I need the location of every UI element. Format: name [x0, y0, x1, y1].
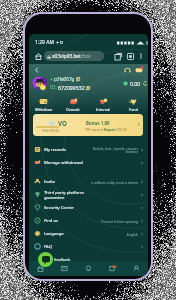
- button[interactable]: FAQ: [29, 240, 148, 253]
- staticText: /hot: [81, 53, 91, 60]
- button[interactable]: Home: [29, 261, 52, 276]
- staticText: feedback: [54, 257, 71, 262]
- button[interactable]: Third party platform guarantee: [29, 188, 148, 201]
- button[interactable]: Manage withdrawal: [29, 156, 148, 169]
- staticText: VIP required: [85, 128, 104, 132]
- button[interactable]: Profile: [124, 261, 148, 276]
- button[interactable]: x03vip03.bet: [44, 51, 104, 61]
- staticText: Prevent it from opening: [101, 219, 138, 223]
- button[interactable]: Fund: [118, 95, 148, 111]
- staticText: x03vip03.bet: [52, 53, 81, 60]
- staticText: Third party platform guarantee: [44, 190, 84, 200]
- staticText: My records: [44, 147, 66, 153]
- staticText: Interest: [96, 107, 110, 111]
- staticText: p3fe067g: [54, 76, 75, 82]
- button[interactable]: feedback: [38, 252, 71, 267]
- staticText: VO: [58, 119, 67, 127]
- button[interactable]: Language: [29, 227, 148, 240]
- staticText: Details, bets, reports, recover balance: [92, 146, 138, 154]
- button[interactable]: Interest: [88, 95, 118, 111]
- button[interactable]: Back: [31, 64, 42, 75]
- staticText: ID:: [50, 84, 57, 91]
- button[interactable]: 0.00: [123, 80, 148, 87]
- button[interactable]: Records: [100, 261, 124, 276]
- staticText: Invite: [44, 179, 56, 185]
- button[interactable]: Deposit: [58, 95, 88, 111]
- staticText: 1:29 AM: [35, 39, 54, 46]
- staticText: 0.00/100.00: [42, 129, 59, 133]
- staticText: 672099532: [58, 84, 85, 91]
- staticText: Bonus 1.80: [86, 120, 110, 126]
- staticText: FAQ: [44, 244, 52, 250]
- button[interactable]: More options: [137, 52, 145, 60]
- staticText: English: [126, 232, 138, 236]
- staticText: Deposit: [66, 107, 80, 111]
- staticText: Fund: [129, 107, 138, 111]
- staticText: Find us: [44, 218, 59, 224]
- button[interactable]: Home: [33, 51, 43, 61]
- button[interactable]: Promotions: [52, 261, 76, 276]
- button[interactable]: Withdraw: [29, 95, 58, 111]
- button[interactable]: Switch tabs: [114, 52, 123, 61]
- staticText: Withdraw: [35, 107, 53, 111]
- button[interactable]: Support: [122, 65, 132, 75]
- button[interactable]: Messages: [134, 65, 144, 75]
- button[interactable]: Find us: [29, 214, 148, 227]
- staticText: Manage withdrawal: [44, 160, 83, 166]
- button[interactable]: Activity: [76, 261, 100, 276]
- button[interactable]: My records: [29, 143, 148, 156]
- button[interactable]: Security Center: [29, 201, 148, 214]
- staticText: Security Center: [44, 205, 75, 211]
- staticText: Deposit: [104, 128, 116, 132]
- staticText: n millions a day is not a dream: [90, 180, 138, 184]
- staticText: Language: [44, 231, 64, 237]
- staticText: 100.00: [116, 128, 127, 132]
- button[interactable]: VO: [33, 114, 143, 136]
- button[interactable]: Tab count: [126, 52, 135, 61]
- button[interactable]: Invite: [29, 175, 148, 188]
- staticText: 0.00: [130, 80, 141, 87]
